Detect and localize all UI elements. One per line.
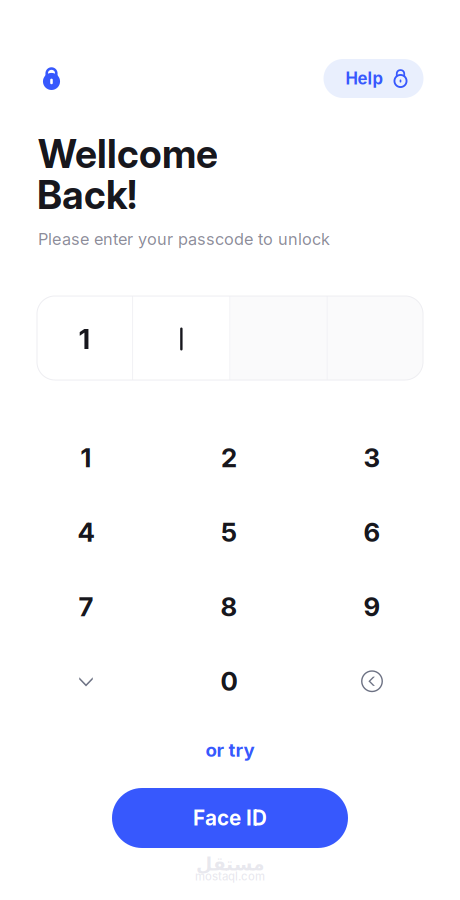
staticText: 6 [363, 516, 380, 548]
staticText: Wellcome [38, 131, 218, 177]
staticText: Help [345, 68, 383, 89]
staticText: 3 [363, 442, 380, 473]
button[interactable]: 2 [169, 423, 289, 493]
button[interactable]: 9 [312, 572, 432, 642]
button[interactable]: 1 [26, 423, 146, 493]
staticText: Back! [37, 172, 137, 218]
button[interactable]: or try [170, 737, 290, 763]
button[interactable]: 8 [169, 572, 289, 642]
staticText: or try [205, 739, 254, 761]
staticText: 2 [221, 442, 237, 473]
staticText: 7 [78, 591, 93, 622]
button[interactable]: 5 [169, 497, 289, 567]
staticText: Face ID [193, 805, 267, 830]
button[interactable]: 6 [312, 497, 432, 567]
staticText: 5 [221, 516, 237, 548]
button[interactable]: 4 [26, 497, 146, 567]
staticText: 4 [77, 516, 94, 548]
staticText: 0 [220, 665, 237, 697]
button[interactable]: Hide keypad [26, 646, 146, 716]
staticText: 1 [79, 322, 90, 356]
button[interactable]: 3 [312, 423, 432, 493]
button[interactable]: 0 [169, 646, 289, 716]
staticText: mostaql.com [195, 870, 265, 883]
staticText: مستقل [195, 853, 264, 875]
staticText: 9 [363, 591, 380, 622]
staticText: 1 [80, 442, 91, 473]
button[interactable]: Face ID [112, 788, 348, 848]
button[interactable]: Help [323, 59, 423, 98]
staticText: Please enter your passcode to unlock [38, 229, 330, 249]
button[interactable]: Delete [312, 646, 432, 716]
button[interactable]: 7 [26, 572, 146, 642]
button[interactable]: Locked [31, 58, 71, 98]
staticText: 8 [220, 591, 237, 622]
